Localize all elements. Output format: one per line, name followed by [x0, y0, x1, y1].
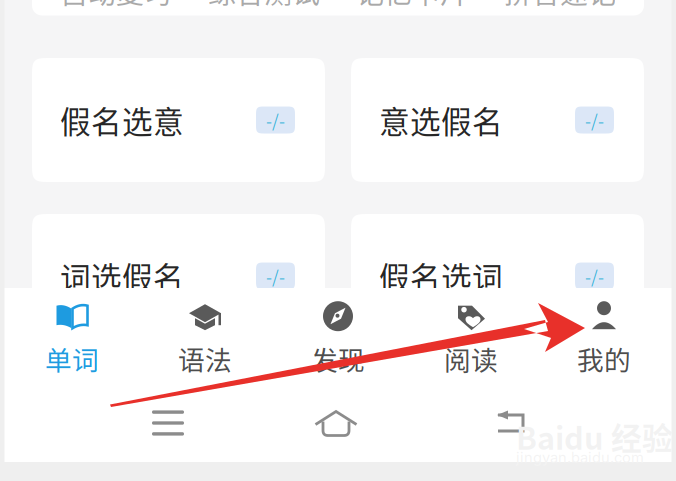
staticText: Baidu 经验: [516, 414, 673, 459]
staticText: 发现: [311, 339, 365, 378]
button[interactable]: Recents: [114, 392, 221, 454]
button[interactable]: 发现: [271, 291, 404, 381]
button[interactable]: 阅读: [404, 291, 537, 381]
button[interactable]: 我的: [537, 291, 670, 381]
button[interactable]: 意选假名: [351, 58, 644, 182]
staticText: 我的: [577, 339, 631, 378]
button[interactable]: 单词: [5, 291, 138, 381]
staticText: -/-: [266, 263, 285, 289]
staticText: -/-: [585, 263, 604, 289]
staticText: jingyan.baidu.com: [516, 449, 644, 466]
button[interactable]: Home: [282, 392, 389, 454]
button[interactable]: 假名选词: [351, 214, 644, 338]
button[interactable]: Back: [459, 392, 566, 454]
staticText: -/-: [266, 107, 285, 133]
staticText: 语法: [178, 339, 232, 378]
staticText: 词选假名: [60, 254, 184, 298]
button[interactable]: 假名选意: [32, 58, 325, 182]
staticText: 假名选词: [379, 254, 503, 298]
staticText: 综合测试: [208, 0, 320, 12]
staticText: 拼音速记: [504, 0, 616, 12]
staticText: 单词: [45, 339, 99, 378]
button[interactable]: 语法: [138, 291, 271, 381]
staticText: 假名选意: [60, 98, 184, 142]
staticText: 阅读: [444, 339, 498, 378]
staticText: 记忆卡片: [356, 0, 468, 12]
staticText: 自动复习: [60, 0, 172, 12]
button[interactable]: 词选假名: [32, 214, 325, 338]
staticText: 意选假名: [379, 98, 503, 142]
staticText: -/-: [585, 107, 604, 133]
